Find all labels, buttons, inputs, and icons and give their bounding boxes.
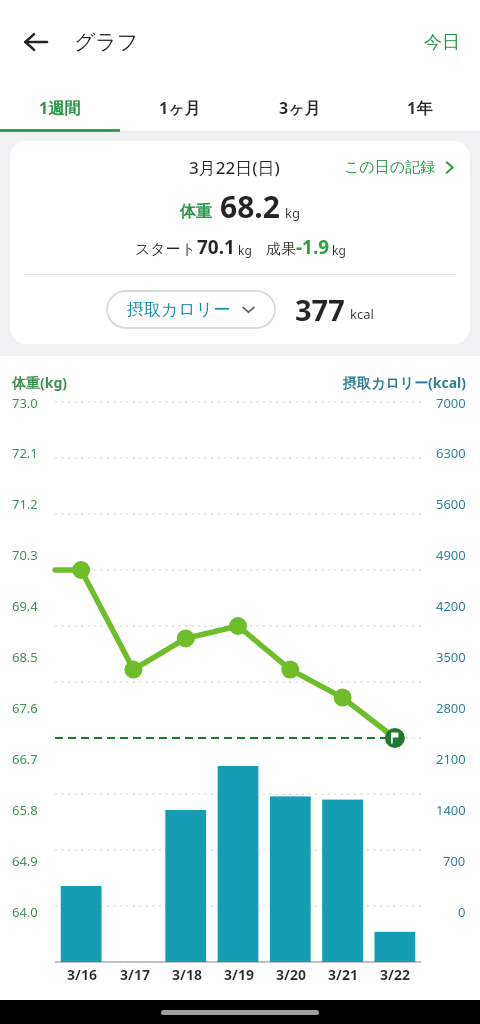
button[interactable]: この日の記録 (344, 158, 456, 177)
button[interactable]: 摂取カロリー (106, 290, 276, 329)
staticText: 68.5 (12, 648, 38, 666)
button[interactable]: 1ヶ月 (120, 84, 240, 132)
staticText: -1.9 (296, 234, 330, 260)
staticText: 377 (295, 290, 345, 329)
staticText: 71.2 (12, 495, 38, 513)
staticText: 3/19 (224, 965, 254, 984)
staticText: 体重(kg) (12, 373, 68, 392)
staticText: 摂取カロリー (127, 299, 231, 320)
button[interactable]: 今日 (416, 25, 468, 60)
staticText: 70.3 (12, 546, 38, 564)
staticText: 70.1 (197, 234, 235, 260)
staticText: 3月22日(日) (189, 156, 280, 179)
button[interactable]: 3月22日(日) (10, 141, 470, 344)
staticText: 700 (443, 852, 466, 870)
staticText: 3/18 (172, 965, 202, 984)
staticText: 6300 (436, 444, 466, 462)
staticText: 摂取カロリー(kcal) (343, 373, 466, 392)
button[interactable]: 1年 (360, 84, 480, 132)
staticText: 68.2 (220, 186, 280, 227)
button[interactable]: Back (13, 19, 59, 65)
staticText: 64.0 (12, 903, 38, 921)
staticText: 今日 (424, 31, 460, 54)
staticText: スタート (135, 240, 197, 259)
button[interactable]: 1週間 (0, 84, 120, 132)
staticText: この日の記録 (344, 158, 436, 177)
staticText: 1ヶ月 (159, 97, 201, 119)
staticText: 5600 (436, 495, 466, 513)
staticText: kg (285, 204, 300, 222)
staticText: 3/20 (276, 965, 306, 984)
staticText: 65.8 (12, 801, 38, 819)
staticText: 0 (458, 903, 466, 921)
staticText: 3/21 (328, 965, 358, 984)
staticText: 67.6 (12, 699, 38, 717)
staticText: 1週間 (39, 97, 81, 119)
staticText: 7000 (436, 394, 466, 412)
staticText: 3/22 (380, 965, 410, 984)
staticText: 4200 (436, 597, 466, 615)
staticText: 72.1 (12, 444, 38, 462)
staticText: 成果 (266, 240, 296, 259)
staticText: 69.4 (12, 597, 38, 615)
staticText: kg (238, 242, 252, 258)
staticText: 2100 (436, 750, 466, 768)
staticText: グラフ (74, 29, 139, 55)
staticText: 73.0 (12, 394, 38, 412)
staticText: 66.7 (12, 750, 38, 768)
staticText: kg (332, 242, 346, 258)
staticText: 体重 (180, 202, 212, 222)
staticText: 3/16 (67, 965, 97, 984)
staticText: 3500 (436, 648, 466, 666)
staticText: 3/17 (120, 965, 150, 984)
staticText: 1400 (436, 801, 466, 819)
staticText: kcal (350, 305, 374, 323)
staticText: 3ヶ月 (279, 97, 321, 119)
staticText: 64.9 (12, 852, 38, 870)
button[interactable]: 3ヶ月 (240, 84, 360, 132)
staticText: 2800 (436, 699, 466, 717)
staticText: 4900 (436, 546, 466, 564)
staticText: 1年 (407, 97, 433, 119)
